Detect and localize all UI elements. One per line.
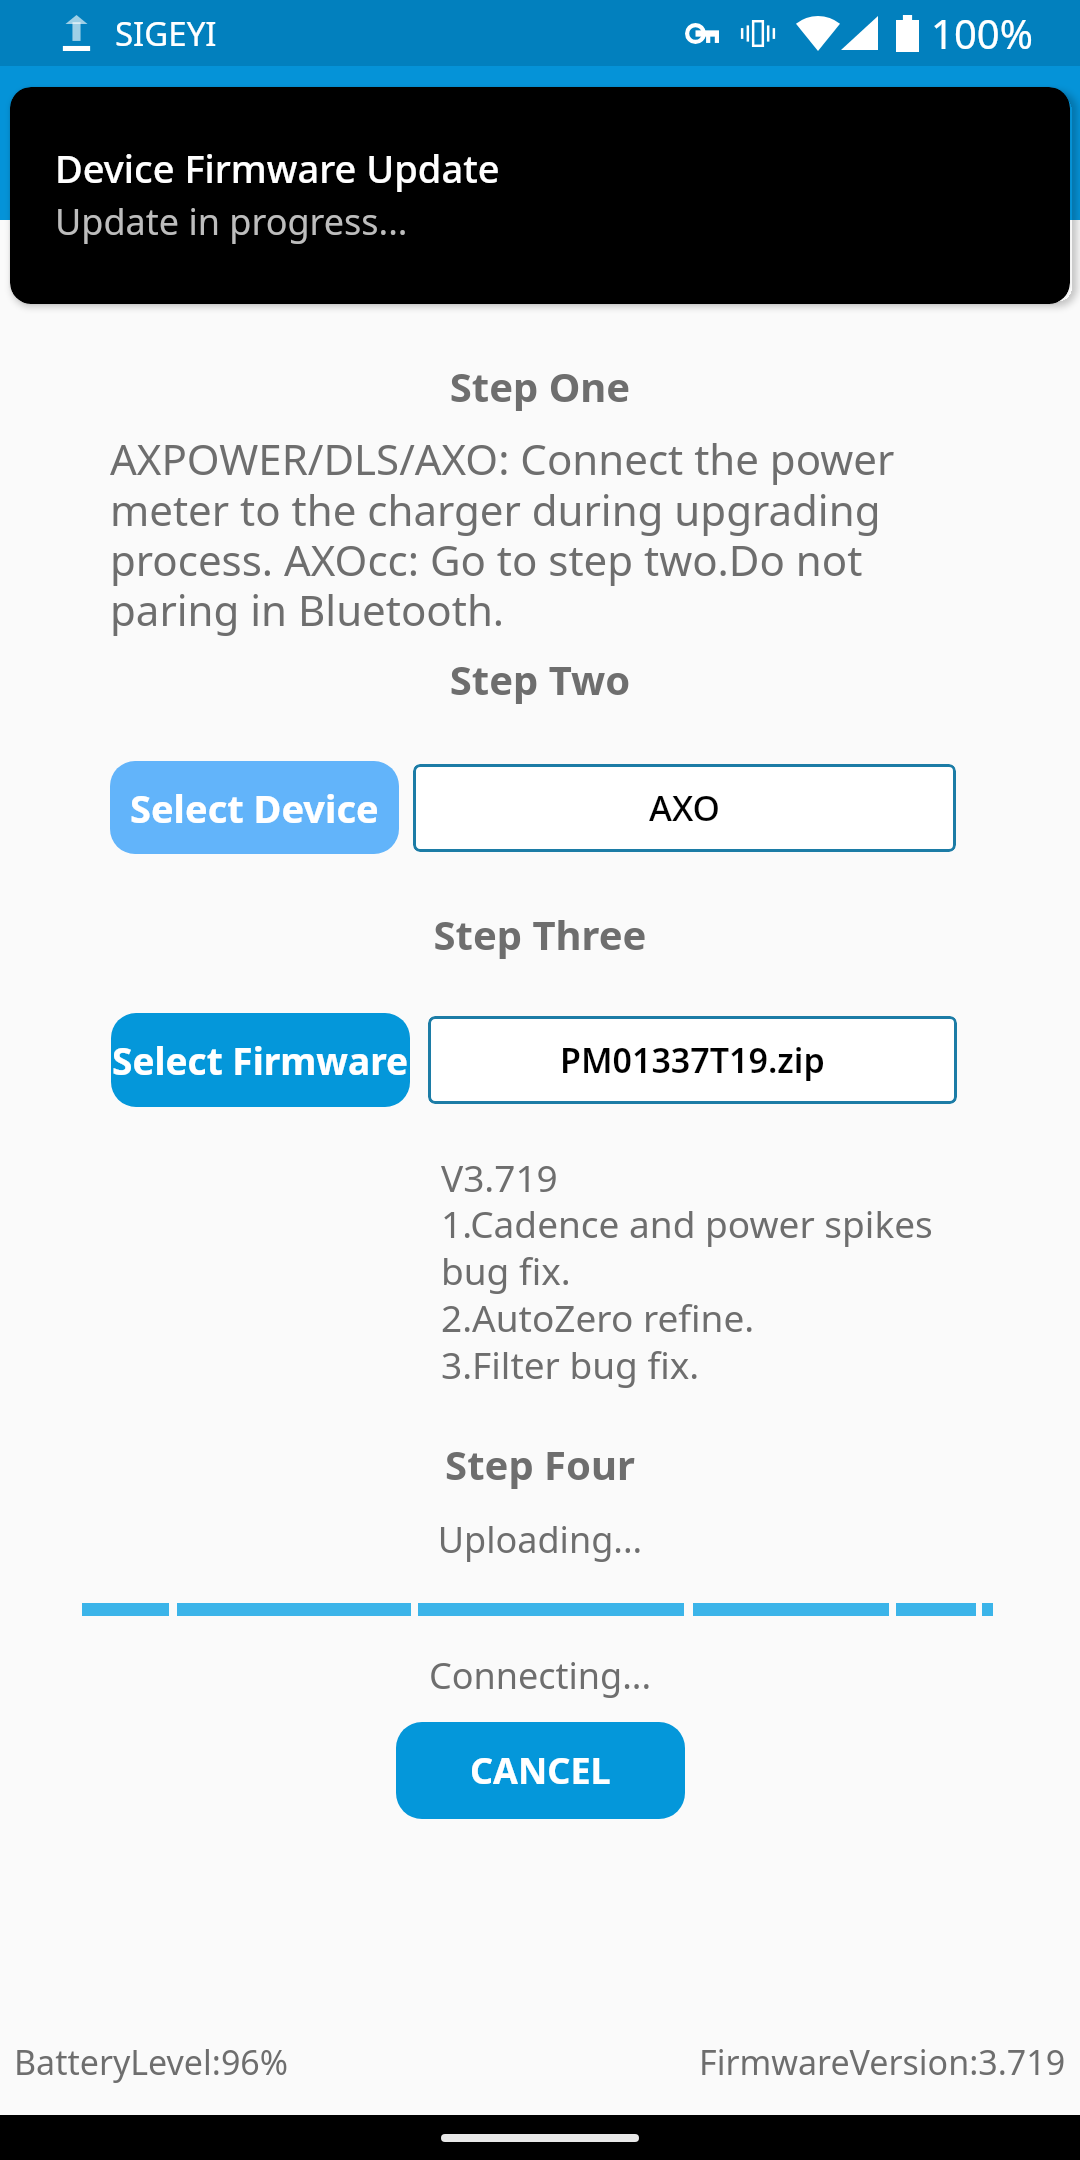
- staticText: AXPOWER/DLS/AXO: Connect the power meter…: [110, 430, 930, 638]
- staticText: 100%: [931, 6, 1033, 60]
- button[interactable]: AXO: [413, 764, 956, 852]
- button[interactable]: Select Firmware: [111, 1013, 410, 1107]
- staticText: Select Firmware: [112, 1035, 409, 1085]
- staticText: SIGEYI: [115, 11, 217, 56]
- staticText: Update in progress...: [55, 197, 408, 246]
- staticText: Device Firmware Update: [55, 142, 500, 194]
- staticText: Step Two: [0, 652, 1080, 706]
- staticText: CANCEL: [470, 1746, 611, 1795]
- button[interactable]: Select Device: [110, 761, 399, 854]
- staticText: PM01337T19.zip: [560, 1037, 825, 1083]
- staticText: FirmwareVersion:3.719: [699, 2039, 1066, 2085]
- staticText: Step Four: [0, 1437, 1080, 1491]
- staticText: Step Three: [0, 907, 1080, 961]
- staticText: BatteryLevel:96%: [14, 2039, 289, 2085]
- button[interactable]: CANCEL: [396, 1722, 685, 1819]
- staticText: Connecting...: [0, 1651, 1080, 1700]
- staticText: Uploading...: [0, 1515, 1080, 1564]
- staticText: V3.719 1.Cadence and power spikes bug fi…: [441, 1152, 961, 1390]
- staticText: Select Device: [130, 782, 379, 834]
- staticText: Step One: [0, 359, 1080, 413]
- button[interactable]: PM01337T19.zip: [428, 1016, 957, 1104]
- other: Upload: [62, 15, 91, 51]
- staticText: AXO: [649, 784, 721, 832]
